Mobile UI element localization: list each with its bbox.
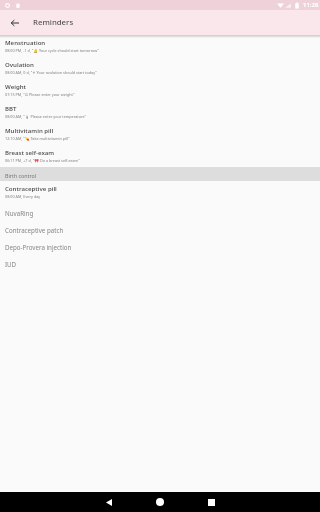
staticText: Breast self-exam bbox=[5, 149, 55, 157]
staticText: 07:15 PM, "⚖️ Please enter your weight" bbox=[5, 92, 75, 97]
button[interactable]: BBT bbox=[0, 101, 320, 123]
staticText: Ovulation bbox=[5, 61, 34, 69]
staticText: 08:00 AM, "🌡️ Please enter your temperat… bbox=[5, 114, 87, 119]
staticText: Depo-Provera injection bbox=[5, 243, 72, 251]
staticText: Weight bbox=[5, 83, 26, 91]
button[interactable]: Breast self-exam bbox=[0, 145, 320, 167]
staticText: Multivitamin pill bbox=[5, 127, 54, 135]
button[interactable]: Ovulation bbox=[0, 57, 320, 79]
button[interactable]: IUD bbox=[0, 254, 320, 271]
button[interactable]: Home bbox=[140, 492, 180, 512]
button[interactable]: Weight bbox=[0, 79, 320, 101]
button[interactable]: Navigate up bbox=[0, 10, 29, 35]
button[interactable]: Back bbox=[89, 492, 129, 512]
staticText: BBT bbox=[5, 105, 17, 113]
staticText: Menstruation bbox=[5, 39, 46, 47]
button[interactable]: Recent apps bbox=[191, 492, 231, 512]
staticText: 12:10 AM, "💊 Take multivitamin pill" bbox=[5, 136, 70, 141]
staticText: 08:00 AM, Every day bbox=[5, 194, 41, 199]
staticText: Contraceptive patch bbox=[5, 226, 64, 234]
staticText: 11:28 bbox=[303, 1, 319, 9]
staticText: 08:00 AM, 0 d, "☀️ Your ovulation should… bbox=[5, 70, 97, 75]
staticText: Birth control bbox=[5, 172, 37, 179]
staticText: IUD bbox=[5, 260, 17, 268]
button[interactable]: Depo-Provera injection bbox=[0, 237, 320, 254]
button[interactable]: Contraceptive patch bbox=[0, 220, 320, 237]
button[interactable]: Multivitamin pill bbox=[0, 123, 320, 145]
staticText: 06:11 PM, +7 d, "🎀 Do a breast self-exam… bbox=[5, 158, 80, 163]
button[interactable]: Menstruation bbox=[0, 35, 320, 57]
staticText: Contraceptive pill bbox=[5, 185, 57, 193]
staticText: Reminders bbox=[33, 17, 74, 28]
button[interactable]: Contraceptive pill bbox=[0, 181, 320, 203]
staticText: 08:00 PM, -1 d, "🔔 Your cycle should sta… bbox=[5, 48, 99, 53]
button[interactable]: NuvaRing bbox=[0, 203, 320, 220]
staticText: NuvaRing bbox=[5, 209, 34, 217]
